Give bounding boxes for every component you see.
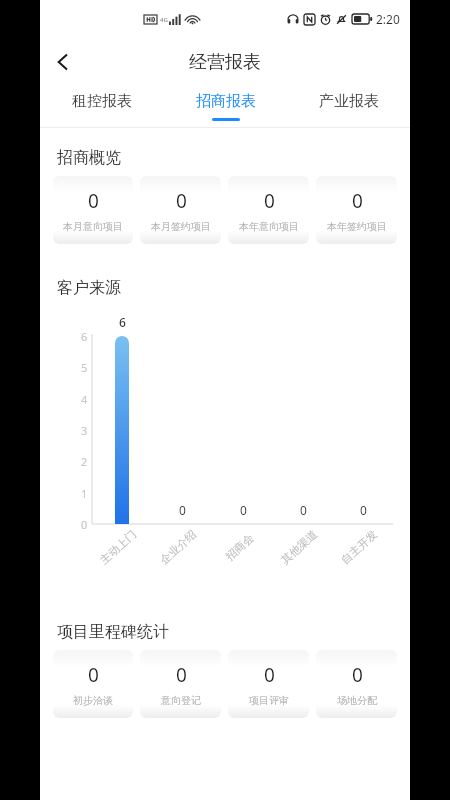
staticText: 5	[81, 360, 88, 375]
staticText: 主动上门	[97, 527, 139, 567]
button[interactable]: 产业报表	[287, 86, 410, 128]
staticText: 0	[81, 517, 88, 532]
button[interactable]: 0	[140, 650, 221, 718]
staticText: 招商概览	[57, 148, 121, 168]
staticText: 0	[240, 502, 247, 518]
staticText: 2	[81, 454, 88, 469]
staticText: 0	[352, 188, 363, 214]
button[interactable]: 0	[228, 176, 309, 244]
staticText: 初步洽谈	[73, 694, 113, 707]
staticText: 0	[179, 502, 186, 518]
staticText: 其他渠道	[278, 527, 320, 567]
staticText: 本年签约项目	[327, 220, 387, 233]
staticText: 项目评审	[249, 694, 289, 707]
staticText: 自主开发	[338, 527, 380, 567]
staticText: 意向登记	[161, 694, 201, 707]
staticText: 本月签约项目	[151, 220, 211, 233]
button[interactable]: 0	[316, 650, 397, 718]
button[interactable]: 0	[53, 650, 133, 718]
staticText: 0	[264, 662, 275, 688]
staticText: 4G	[160, 16, 168, 24]
staticText: 0	[264, 188, 275, 214]
staticText: 0	[352, 662, 363, 688]
staticText: 6	[81, 329, 88, 344]
staticText: 产业报表	[319, 92, 379, 111]
staticText: 0	[88, 662, 99, 688]
staticText: 2:20	[376, 11, 400, 27]
staticText: 企业介绍	[157, 527, 199, 567]
button[interactable]: 0	[228, 650, 309, 718]
staticText: 本年意向项目	[239, 220, 299, 233]
staticText: 招商报表	[196, 92, 256, 111]
staticText: 经营报表	[189, 51, 261, 74]
button[interactable]: 0	[140, 176, 221, 244]
staticText: 3	[81, 423, 88, 438]
staticText: 0	[88, 188, 99, 214]
staticText: 项目里程碑统计	[57, 622, 169, 642]
staticText: 0	[360, 502, 367, 518]
button[interactable]: 0	[53, 176, 133, 244]
staticText: 0	[176, 662, 187, 688]
staticText: 6	[119, 314, 126, 330]
staticText: 本月意向项目	[63, 220, 123, 233]
staticText: 招商会	[223, 531, 256, 563]
staticText: 1	[81, 486, 88, 501]
staticText: 客户来源	[57, 278, 121, 298]
staticText: 场地分配	[337, 694, 377, 707]
staticText: 0	[176, 188, 187, 214]
button[interactable]: 租控报表	[40, 86, 164, 128]
button[interactable]: 招商报表	[164, 86, 287, 128]
button[interactable]: 0	[316, 176, 397, 244]
button[interactable]: 返回	[40, 39, 86, 85]
staticText: 0	[300, 502, 307, 518]
staticText: 租控报表	[72, 92, 132, 111]
staticText: 4	[81, 392, 88, 407]
